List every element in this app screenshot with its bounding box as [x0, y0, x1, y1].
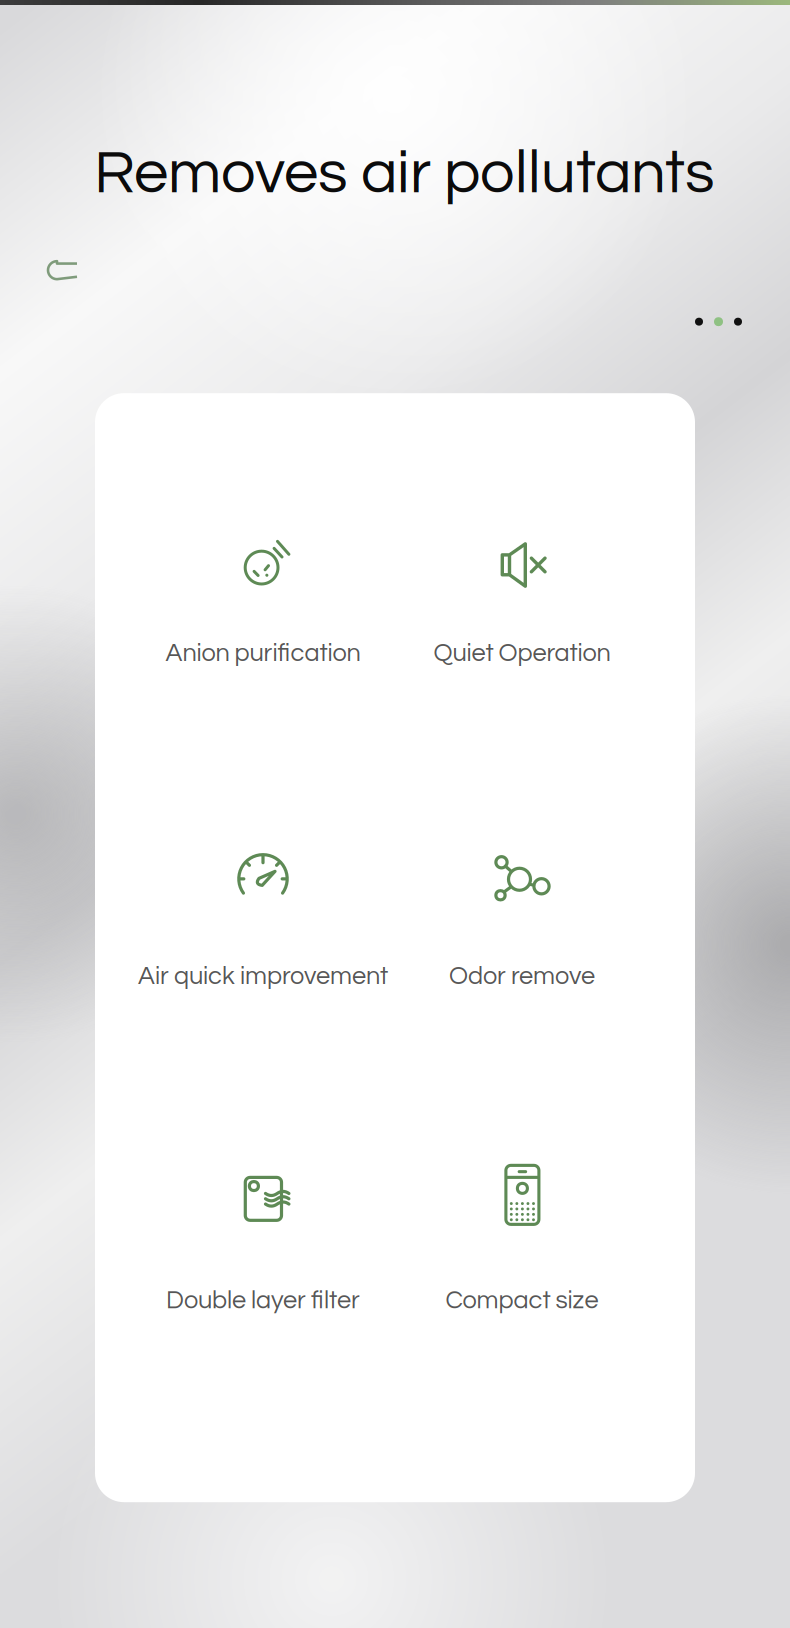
staticText: Quiet Operation: [433, 640, 610, 666]
staticText: Removes air pollutants: [94, 142, 715, 205]
staticText: Anion purification: [165, 640, 360, 666]
button[interactable]: Quiet Operation: [392, 534, 651, 666]
staticText: Double layer filter: [166, 1287, 360, 1313]
staticText: Air quick improvement: [138, 963, 388, 989]
button[interactable]: Anion purification: [133, 534, 392, 666]
button[interactable]: Double layer filter: [133, 1166, 392, 1313]
staticText: Odor remove: [449, 963, 595, 989]
staticText: Compact size: [445, 1287, 598, 1313]
button[interactable]: Odor remove: [392, 848, 651, 989]
button[interactable]: Air quick improvement: [133, 848, 392, 989]
button[interactable]: Compact size: [392, 1166, 651, 1313]
